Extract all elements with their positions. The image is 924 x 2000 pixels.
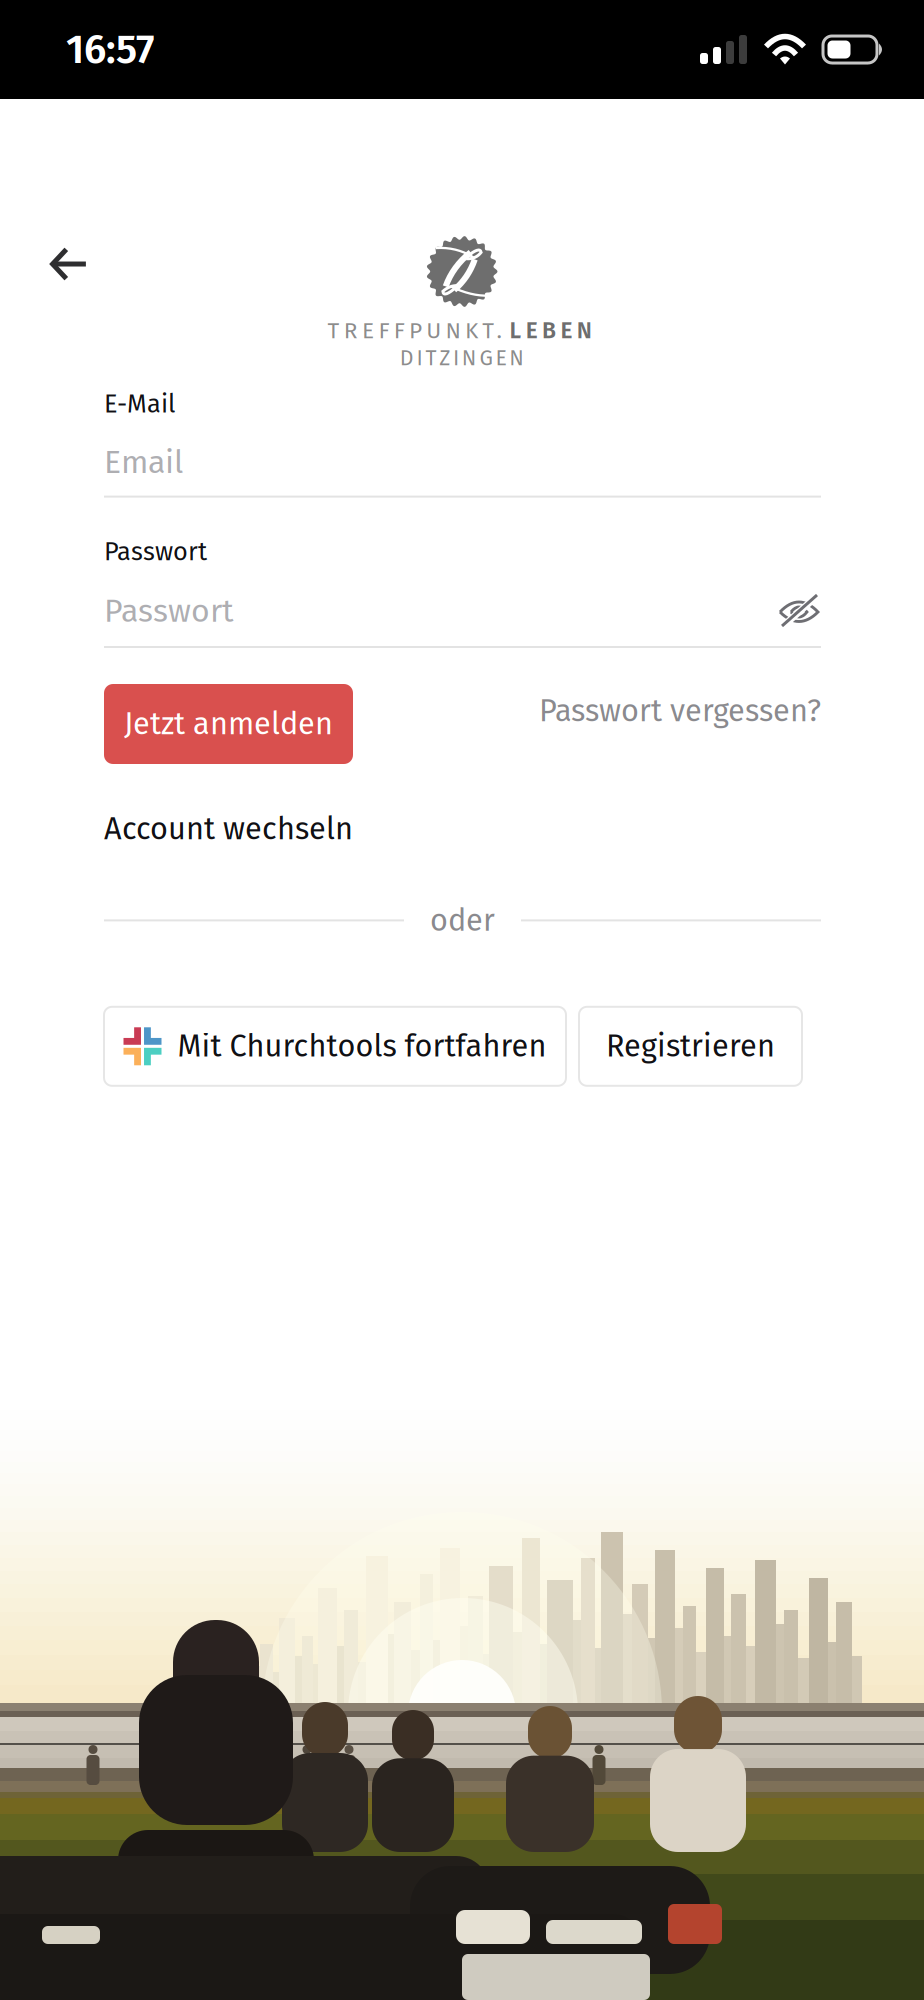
- staticText: Passwort: [104, 537, 207, 567]
- staticText: E-Mail: [104, 389, 175, 419]
- staticText: Mit Churchtools fortfahren: [177, 1028, 546, 1065]
- button[interactable]: Mit Churchtools fortfahren: [104, 1007, 566, 1086]
- staticText: Email: [104, 443, 183, 482]
- button[interactable]: Registrieren: [579, 1007, 802, 1086]
- button[interactable]: Account wechseln: [104, 811, 353, 847]
- staticText: DITZINGEN: [400, 345, 524, 371]
- staticText: Passwort: [104, 592, 234, 630]
- staticText: LEBEN: [509, 317, 592, 344]
- staticText: Jetzt anmelden: [124, 706, 333, 742]
- button[interactable]: Back: [36, 233, 101, 295]
- staticText: Account wechseln: [104, 811, 353, 847]
- button[interactable]: Show password: [777, 589, 821, 633]
- staticText: TREFFPUNKT.: [327, 317, 501, 344]
- staticText: Passwort vergessen?: [539, 693, 821, 729]
- staticText: oder: [430, 902, 495, 939]
- staticText: Registrieren: [606, 1028, 775, 1065]
- staticText: 16:57: [66, 25, 154, 73]
- button[interactable]: Jetzt anmelden: [104, 684, 353, 764]
- button[interactable]: Passwort vergessen?: [539, 688, 821, 734]
